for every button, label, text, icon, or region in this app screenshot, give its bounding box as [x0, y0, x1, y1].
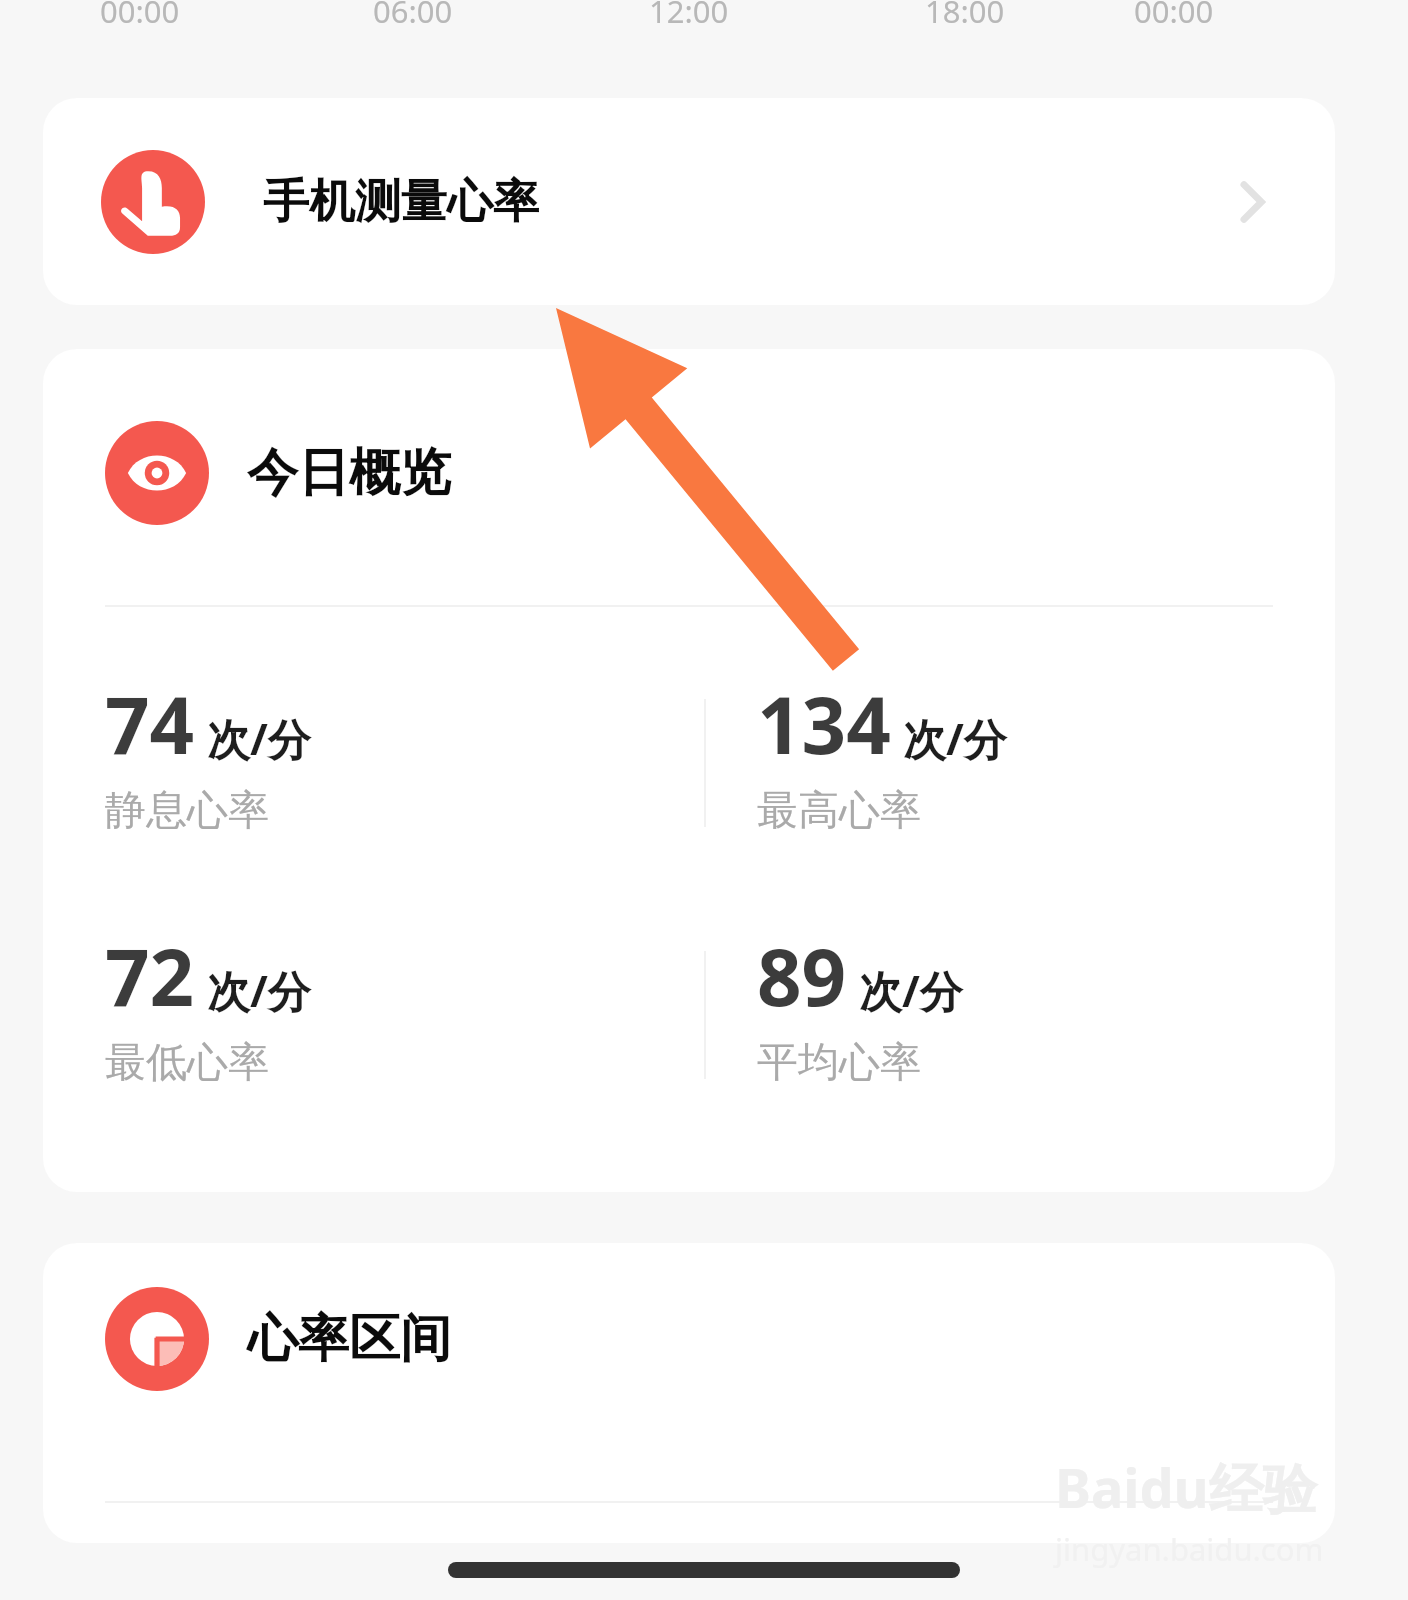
staticText: 18:00: [925, 0, 1005, 32]
staticText: 89: [757, 923, 847, 1029]
staticText: 00:00: [1134, 0, 1214, 32]
staticText: 134: [757, 671, 891, 777]
staticText: 最低心率: [105, 1037, 269, 1089]
staticText: 最高心率: [757, 785, 921, 837]
button[interactable]: 心率区间: [105, 1287, 451, 1391]
staticText: 72: [105, 923, 195, 1029]
staticText: 平均心率: [757, 1037, 921, 1089]
staticText: 74: [105, 671, 195, 777]
staticText: 次/分: [903, 709, 1007, 768]
button[interactable]: 打开手机测量心率: [1223, 172, 1283, 232]
button[interactable]: 今日概览: [105, 421, 451, 525]
staticText: 次/分: [859, 961, 963, 1020]
staticText: 今日概览: [247, 441, 451, 505]
staticText: Baidu经验: [1055, 1450, 1317, 1524]
staticText: jingyan.baidu.com: [1055, 1528, 1324, 1570]
staticText: 06:00: [373, 0, 453, 32]
staticText: 次/分: [207, 961, 311, 1020]
staticText: 手机测量心率: [263, 173, 539, 231]
staticText: 12:00: [649, 0, 729, 32]
staticText: 00:00: [100, 0, 180, 32]
staticText: 静息心率: [105, 785, 269, 837]
button[interactable]: 手机测量心率: [43, 98, 1335, 305]
staticText: 次/分: [207, 709, 311, 768]
staticText: 心率区间: [247, 1307, 451, 1371]
